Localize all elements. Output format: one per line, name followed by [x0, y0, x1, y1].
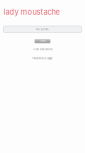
staticText: No posts.: [36, 28, 49, 31]
staticText: Powered by Blogger.: [31, 57, 53, 60]
staticText: lady moustache: [3, 7, 59, 16]
button[interactable]: View web version: [0, 48, 85, 51]
staticText: View web version: [33, 48, 52, 51]
button[interactable]: Home: [35, 39, 50, 43]
staticText: Home: [39, 40, 45, 42]
